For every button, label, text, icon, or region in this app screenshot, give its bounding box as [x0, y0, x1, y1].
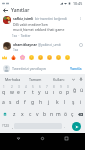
staticText: ?123	[2, 124, 9, 128]
button[interactable]: Send	[67, 120, 85, 132]
button[interactable]: Emoji reaction	[27, 53, 36, 62]
staticText: y	[38, 89, 41, 96]
button[interactable]: ç	[69, 108, 76, 120]
staticText: 1	[3, 85, 5, 89]
button[interactable]: d	[14, 96, 21, 108]
staticText: d	[16, 99, 20, 106]
button[interactable]: 8	[50, 84, 57, 96]
button[interactable]: 6	[36, 84, 43, 96]
button[interactable]: Tamam	[24, 74, 47, 84]
staticText: l	[64, 99, 66, 106]
button[interactable]: Comma	[11, 120, 14, 132]
button[interactable]: Recents	[61, 133, 72, 144]
button[interactable]: Back	[1, 6, 10, 15]
button[interactable]: Emoji reaction	[9, 53, 18, 62]
staticText: 10:45	[73, 1, 83, 6]
button[interactable]: 2	[8, 84, 15, 96]
button[interactable]: 9	[57, 84, 64, 96]
button[interactable]: 7	[43, 84, 50, 96]
staticText: 2	[11, 85, 13, 89]
button[interactable]: n	[48, 108, 55, 120]
staticText: Tweetinizi yanıtlayın	[12, 66, 46, 71]
staticText: g	[31, 99, 35, 106]
button[interactable]: b	[41, 108, 48, 120]
staticText: j	[48, 99, 50, 106]
button[interactable]: Merhaba	[1, 74, 24, 84]
staticText: .	[64, 124, 66, 129]
staticText: e	[17, 89, 20, 96]
staticText: Yanıtlar	[11, 7, 30, 14]
button[interactable]: ?123	[0, 120, 11, 132]
button[interactable]: ü	[78, 84, 85, 96]
button[interactable]: Emoji reaction	[18, 53, 27, 62]
button[interactable]: More suggestions	[70, 74, 77, 84]
staticText: ohamitkaynar	[13, 42, 37, 47]
button[interactable]: Yanıtla	[69, 65, 83, 72]
staticText: s	[9, 99, 12, 106]
staticText: o	[59, 89, 63, 96]
button[interactable]: Backspace	[76, 108, 85, 120]
button[interactable]: Home	[37, 133, 48, 144]
button[interactable]: Emoji reaction	[63, 53, 72, 62]
staticText: x	[21, 111, 24, 118]
staticText: k	[56, 99, 59, 106]
button[interactable]: s	[7, 96, 14, 108]
staticText: u	[45, 89, 49, 96]
button[interactable]: More options	[78, 16, 83, 21]
staticText: m	[56, 111, 61, 118]
button[interactable]: v	[34, 108, 41, 120]
staticText: ,	[12, 124, 14, 129]
staticText: 7	[46, 85, 48, 89]
button[interactable]: k	[53, 96, 61, 108]
button[interactable]: More options	[78, 42, 83, 47]
button[interactable]: ş	[69, 96, 77, 108]
staticText: Merhaba	[5, 77, 21, 82]
staticText: 1sa · Twitter	[12, 34, 31, 38]
button[interactable]: Emoji reaction	[0, 53, 9, 62]
button[interactable]: Emoji reaction	[54, 53, 63, 62]
button[interactable]: Period	[62, 120, 67, 132]
button[interactable]: Shift	[0, 108, 10, 120]
staticText: r	[24, 89, 27, 96]
button[interactable]: f	[21, 96, 29, 108]
button[interactable]: x	[18, 108, 26, 120]
staticText: ö	[64, 111, 68, 118]
button[interactable]: c	[26, 108, 34, 120]
staticText: Dilli vakit mediem'ken	[13, 22, 48, 27]
button[interactable]: i	[77, 96, 85, 108]
button[interactable]: Kullanı	[47, 74, 70, 84]
button[interactable]: m	[55, 108, 62, 120]
staticText: mucit,hizmet orbbed thati game	[13, 27, 65, 32]
staticText: f	[24, 99, 26, 106]
staticText: Tamam	[29, 77, 42, 82]
staticText: ç	[71, 111, 74, 118]
button[interactable]: z	[10, 108, 18, 120]
staticText: b	[43, 111, 47, 118]
staticText: ı	[53, 89, 55, 96]
button[interactable]: Voice input	[77, 74, 85, 84]
staticText: 1sa	[13, 48, 19, 52]
button[interactable]: j	[45, 96, 53, 108]
button[interactable]: Back	[13, 133, 24, 144]
button[interactable]: ö	[62, 108, 69, 120]
button[interactable]: 3	[15, 84, 22, 96]
button[interactable]: a	[0, 96, 7, 108]
staticText: @yakinci_umit	[38, 42, 61, 47]
staticText: safkiz_isimli	[13, 16, 34, 21]
staticText: q	[2, 89, 6, 96]
button[interactable]: Emoji reaction	[45, 53, 54, 62]
button[interactable]: 0	[64, 84, 71, 96]
staticText: 9	[60, 85, 62, 89]
button[interactable]: 1	[0, 84, 8, 96]
button[interactable]: h	[37, 96, 45, 108]
button[interactable]: l	[61, 96, 69, 108]
staticText: 6	[39, 85, 41, 89]
button[interactable]: 4	[22, 84, 29, 96]
button[interactable]: g	[29, 96, 37, 108]
staticText: z	[13, 111, 16, 118]
button[interactable]: 5	[29, 84, 36, 96]
button[interactable]: ğ	[71, 84, 78, 96]
button[interactable]: Emoji reaction	[36, 53, 45, 62]
staticText: c	[29, 111, 32, 118]
